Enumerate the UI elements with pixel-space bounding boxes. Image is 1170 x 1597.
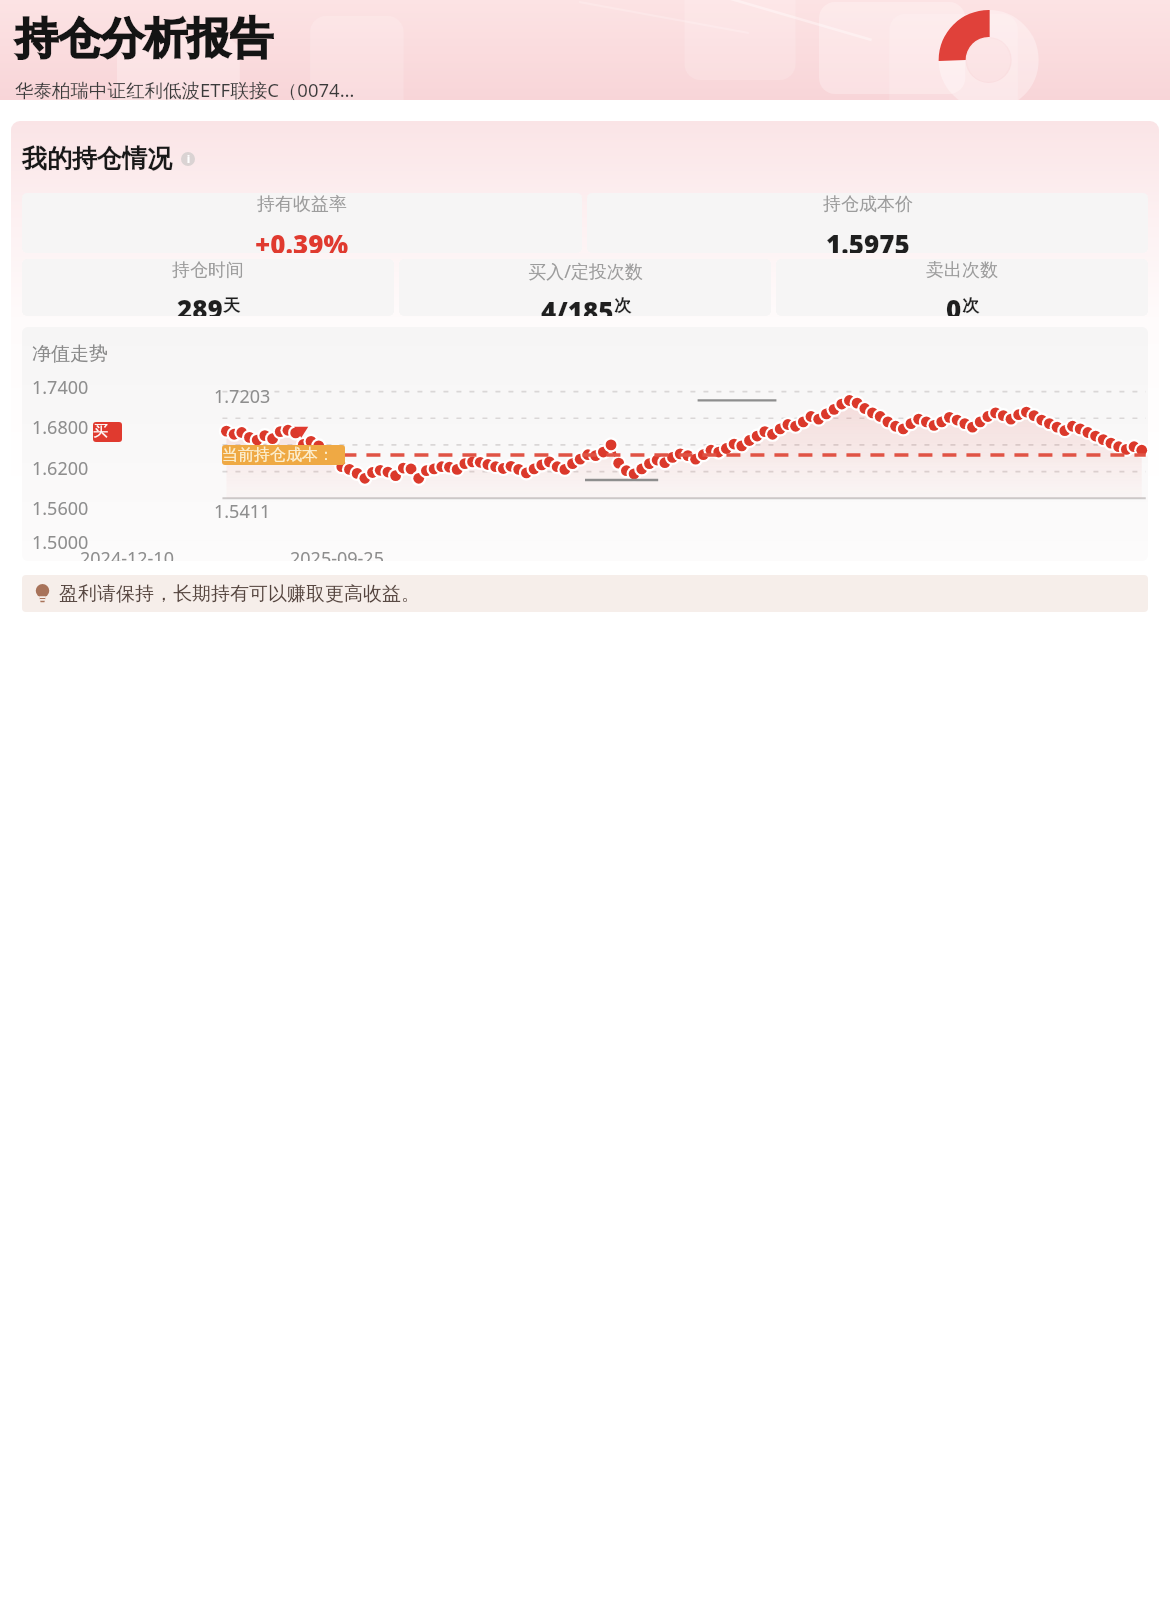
staticText: 净值走势 xyxy=(32,342,108,366)
staticText: 1.6800 xyxy=(32,415,89,440)
staticText: 买入/定投次数 xyxy=(528,259,643,284)
staticText: 1.6200 xyxy=(32,456,89,481)
staticText: 1.7400 xyxy=(32,375,89,400)
staticText: +0.39% xyxy=(255,226,349,253)
button[interactable]: 盈利请保持，长期持有可以赚取更高收益。 xyxy=(22,575,1148,612)
staticText: 1.5000 xyxy=(32,530,89,555)
staticText: 持有收益率 xyxy=(257,193,347,216)
button[interactable]: 持仓说明 xyxy=(181,152,195,166)
button[interactable]: 净值走势图 xyxy=(22,327,1148,561)
staticText: 0 xyxy=(946,291,962,316)
staticText: 卖出次数 xyxy=(926,259,998,282)
staticText: 1.5600 xyxy=(32,496,89,521)
staticText: 华泰柏瑞中证红利低波ETF联接C（0074… xyxy=(15,77,355,102)
staticText: 289 xyxy=(177,291,223,316)
staticText: 1.5411 xyxy=(214,499,271,524)
button[interactable]: 持有收益率 xyxy=(22,193,582,253)
staticText: 1.5975 xyxy=(826,226,910,253)
button[interactable]: 卖出次数 xyxy=(776,259,1148,316)
staticText: 2025-09-25 xyxy=(290,546,384,561)
staticText: 当前持仓成本：1.5975 xyxy=(222,445,345,465)
button[interactable]: 持仓成本价 xyxy=(587,193,1148,253)
staticText: 持仓成本价 xyxy=(823,193,913,216)
staticText: 次 xyxy=(614,295,631,316)
staticText: i xyxy=(187,152,190,166)
staticText: 2024-12-10 xyxy=(80,546,174,561)
button[interactable]: 买入/定投次数 xyxy=(399,259,771,316)
staticText: 持仓分析报告 xyxy=(15,12,273,66)
staticText: 天 xyxy=(223,295,240,316)
staticText: 盈利请保持，长期持有可以赚取更高收益。 xyxy=(59,582,420,606)
staticText: 我的持仓情况 xyxy=(22,143,172,174)
staticText: 1.7203 xyxy=(214,384,271,409)
staticText: 4/185 xyxy=(541,293,614,316)
staticText: 持仓时间 xyxy=(172,259,244,282)
button[interactable]: 持仓时间 xyxy=(22,259,394,316)
staticText: 买入 xyxy=(93,422,122,442)
staticText: 次 xyxy=(962,295,979,316)
